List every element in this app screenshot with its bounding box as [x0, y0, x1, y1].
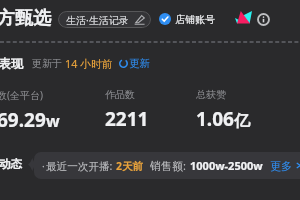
staticText: 1000w-2500w: [190, 158, 263, 173]
staticText: 更新: [129, 57, 150, 70]
staticText: 生活·生活记录: [66, 13, 129, 27]
staticText: 方甄选: [0, 7, 51, 30]
staticText: 14 小时前: [65, 56, 113, 71]
staticText: 2天前: [116, 159, 144, 173]
staticText: 更新于: [32, 57, 62, 70]
staticText: 2211: [105, 106, 149, 132]
staticText: 总获赞: [196, 88, 226, 101]
other: Douyin: [235, 11, 252, 24]
staticText: 作品数: [105, 88, 135, 101]
button[interactable]: 生活·生活记录: [58, 11, 151, 28]
staticText: 亿: [234, 111, 250, 131]
button[interactable]: ·: [34, 152, 300, 179]
staticText: 更多: [270, 159, 292, 173]
staticText: 数(全平台): [0, 88, 43, 102]
button[interactable]: Info: [257, 13, 270, 26]
staticText: 69.29: [0, 107, 46, 133]
staticText: 动态: [0, 157, 22, 171]
staticText: 最近一次开播:: [46, 159, 113, 173]
staticText: 表现: [0, 56, 23, 71]
button[interactable]: 更新: [119, 57, 150, 70]
staticText: ·: [42, 159, 45, 173]
staticText: 销售额:: [150, 158, 186, 173]
staticText: 店铺账号: [175, 13, 215, 26]
staticText: 1.06: [196, 106, 234, 132]
staticText: w: [46, 110, 60, 132]
